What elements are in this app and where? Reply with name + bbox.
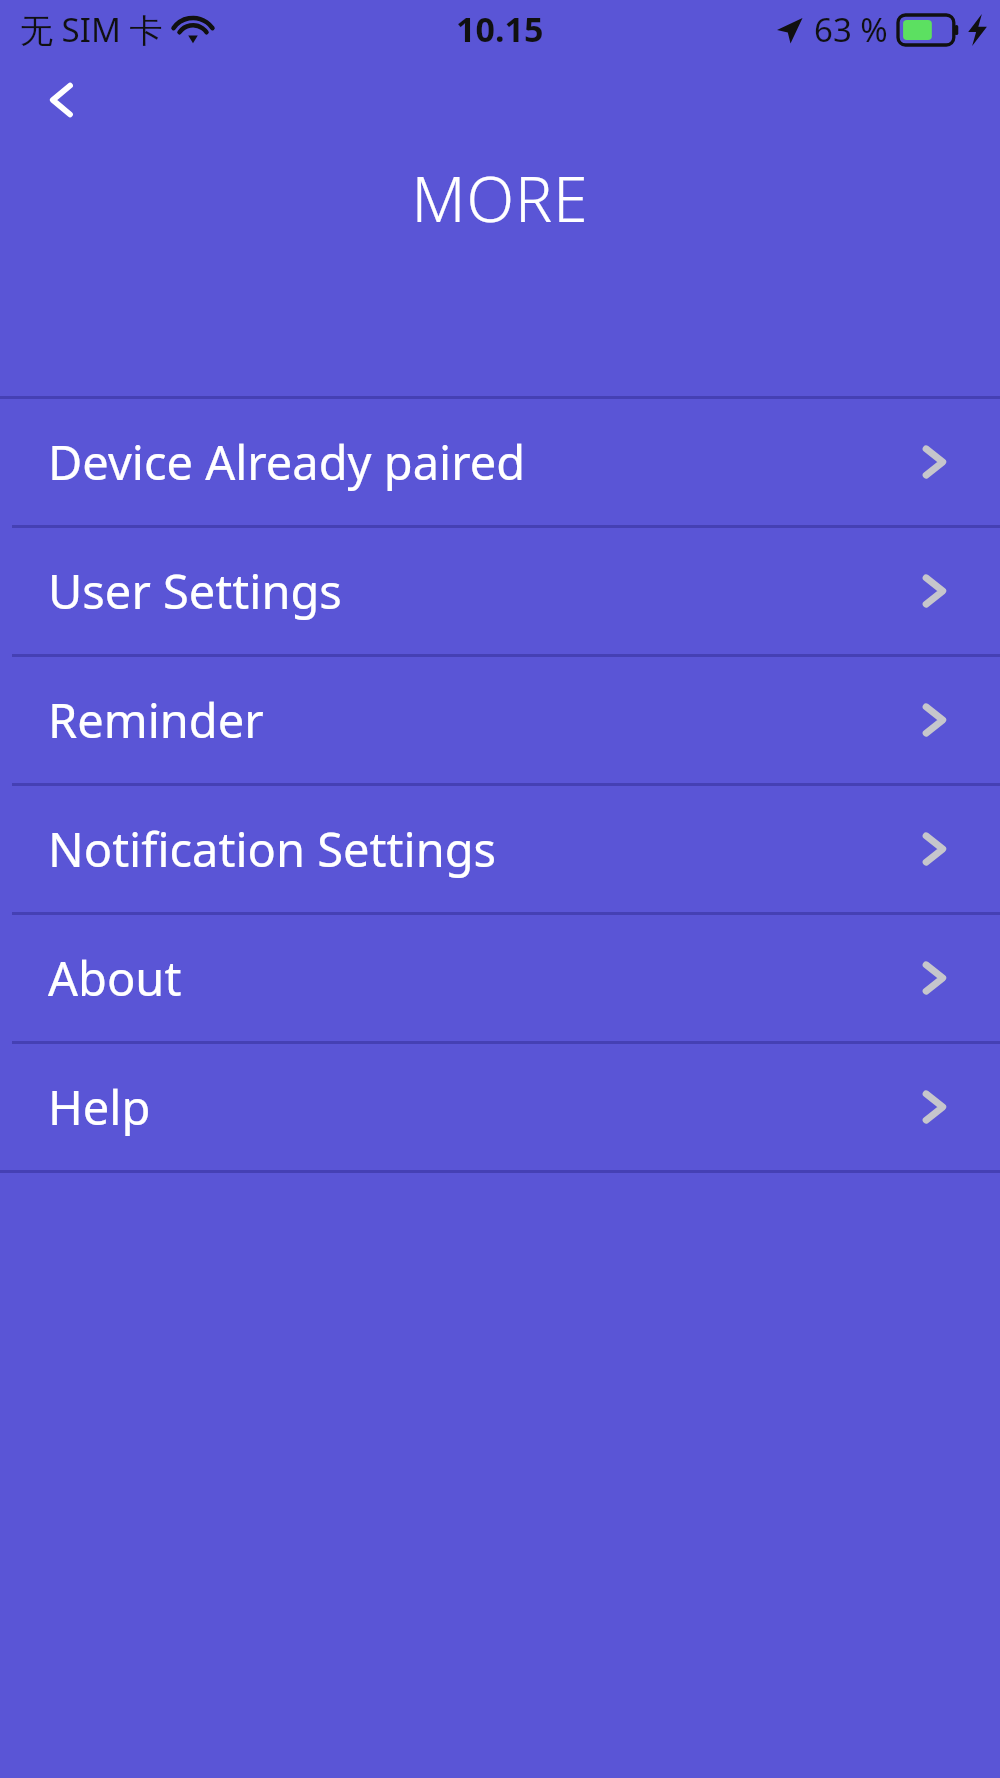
staticText: 10.15 [456,6,544,52]
staticText: 63 % [814,7,888,52]
button[interactable]: Notification Settings [0,786,1000,912]
staticText: User Settings [48,559,912,623]
staticText: Reminder [48,688,912,752]
staticText: About [48,946,912,1010]
staticText: Notification Settings [48,817,912,881]
button[interactable]: Back [26,64,98,136]
staticText: Device Already paired [48,430,912,494]
button[interactable]: Reminder [0,657,1000,783]
button[interactable]: User Settings [0,528,1000,654]
button[interactable]: Help [0,1044,1000,1170]
staticText: MORE [411,156,589,240]
button[interactable]: About [0,915,1000,1041]
button[interactable]: Device Already paired [0,399,1000,525]
staticText: 无 SIM 卡 [20,7,163,52]
staticText: Help [48,1075,912,1139]
